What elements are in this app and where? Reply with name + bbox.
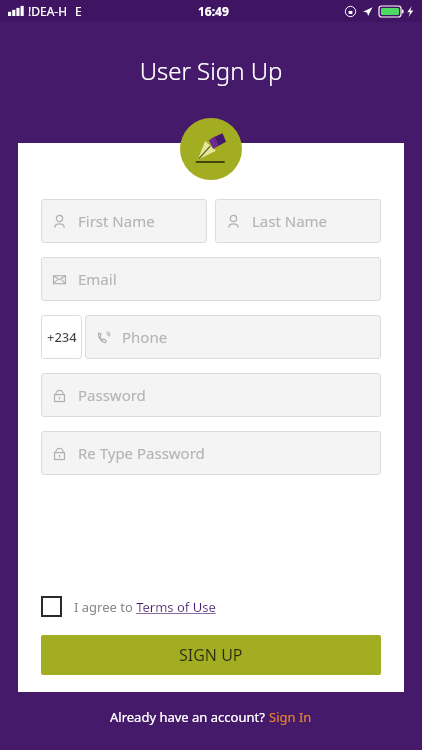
button[interactable]: +234 (41, 315, 82, 359)
button[interactable]: First Name (41, 199, 207, 243)
button[interactable]: Last Name (215, 199, 381, 243)
staticText: Phone (122, 327, 168, 347)
button[interactable]: Phone (85, 315, 381, 359)
button[interactable]: Re Type Password (41, 431, 381, 475)
staticText: +234 (47, 328, 77, 346)
staticText: SIGN UP (179, 644, 243, 666)
staticText: Last Name (252, 211, 328, 231)
button[interactable]: Agree to terms checkbox (41, 596, 216, 617)
button[interactable]: Sign In (269, 708, 312, 726)
staticText: Password (78, 385, 146, 405)
staticText: I agree to Terms of Use (74, 598, 216, 616)
staticText: 16:49 (198, 3, 229, 19)
button[interactable]: Email (41, 257, 381, 301)
staticText: First Name (78, 211, 155, 231)
staticText: Already have an account? (110, 708, 269, 726)
button[interactable]: Password (41, 373, 381, 417)
other: Agree to terms checkbox (41, 596, 62, 617)
staticText: !DEA-H (28, 3, 68, 19)
staticText: Re Type Password (78, 443, 205, 463)
staticText: E (75, 3, 82, 19)
button[interactable]: SIGN UP (41, 635, 381, 675)
button[interactable]: Edit profile photo (180, 118, 242, 180)
staticText: Email (78, 269, 117, 289)
staticText: User Sign Up (0, 54, 422, 87)
